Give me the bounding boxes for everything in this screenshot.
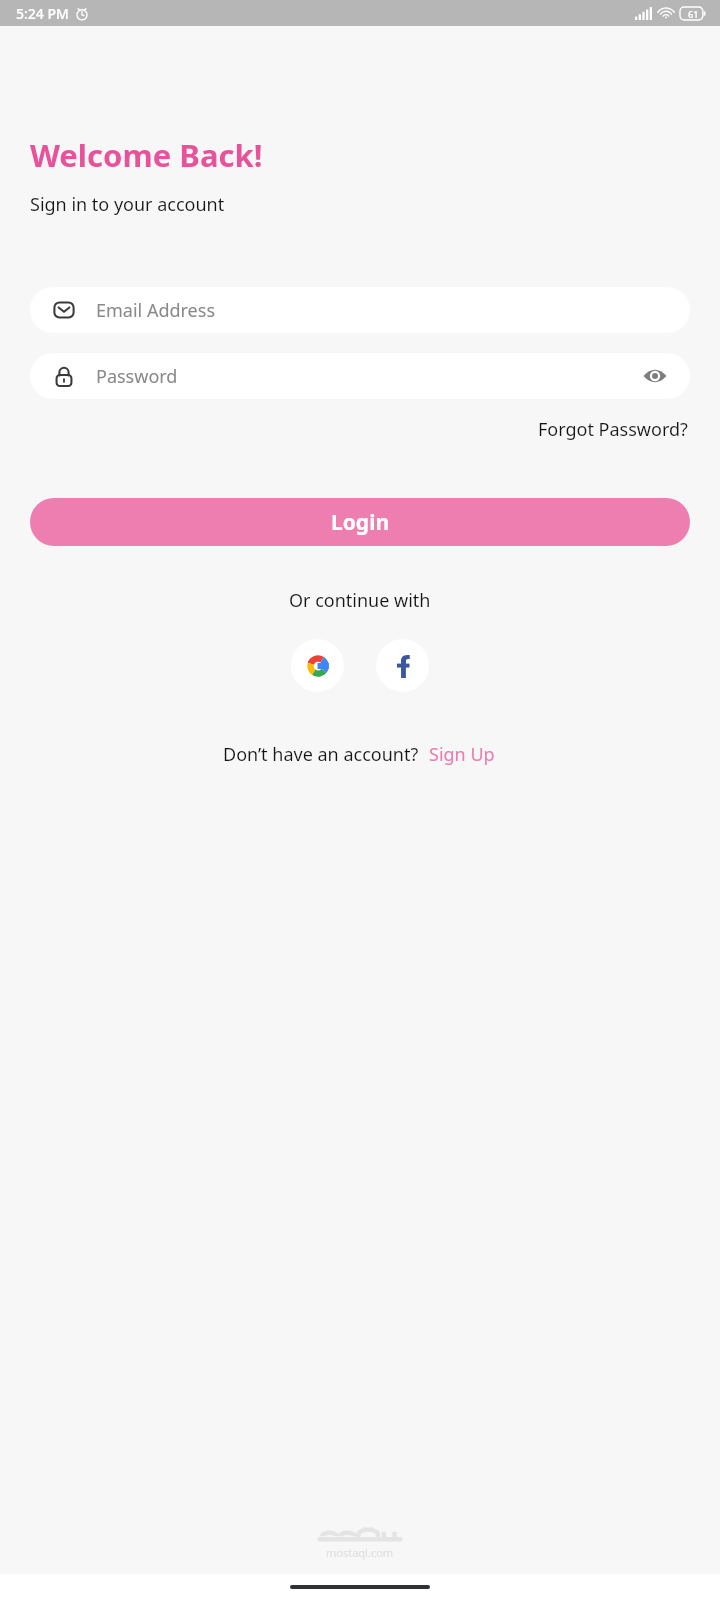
button[interactable]: Email Address	[30, 287, 690, 333]
staticText: Sign in to your account	[30, 192, 225, 217]
button[interactable]: Sign Up	[427, 738, 497, 771]
staticText: Forgot Password?	[538, 417, 688, 442]
staticText: Sign Up	[429, 742, 495, 767]
staticText: Don’t have an account?	[223, 742, 419, 767]
staticText: Email Address	[96, 298, 216, 323]
staticText: 61	[688, 8, 699, 20]
staticText: Password	[96, 364, 178, 389]
staticText: Or continue with	[289, 588, 431, 613]
button[interactable]: Sign in with Facebook	[376, 639, 429, 692]
staticText: 5:24 PM	[16, 4, 69, 23]
button[interactable]: Forgot Password?	[536, 413, 690, 446]
button[interactable]: Show password	[642, 363, 668, 389]
staticText: mostaql.com	[326, 1545, 394, 1560]
button[interactable]: Login	[30, 498, 690, 546]
button[interactable]: Sign in with Google	[291, 639, 344, 692]
staticText: Welcome Back!	[30, 134, 263, 176]
button[interactable]: Password	[30, 353, 690, 399]
staticText: Login	[331, 508, 390, 537]
